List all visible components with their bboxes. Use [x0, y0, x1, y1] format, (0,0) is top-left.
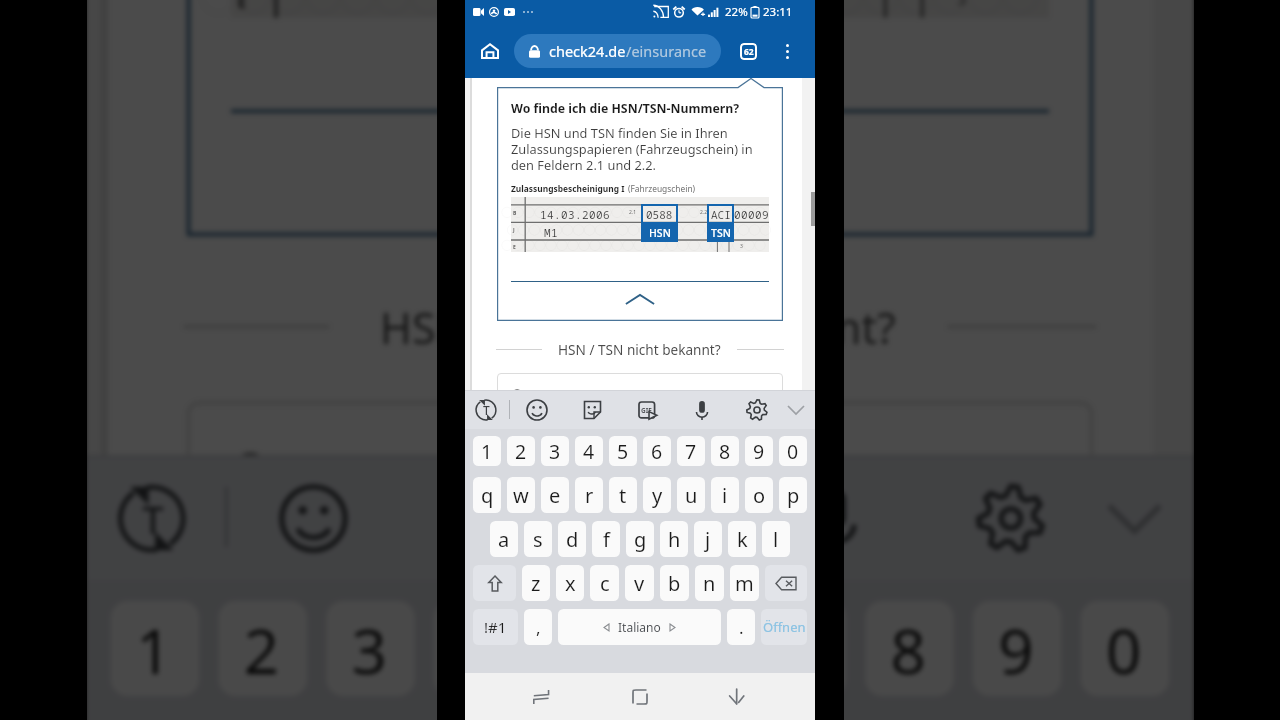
button[interactable]: l: [762, 521, 790, 557]
staticText: Öffnen: [763, 618, 806, 636]
button[interactable]: 5: [609, 436, 637, 466]
button[interactable]: f: [592, 521, 620, 557]
button[interactable]: s: [524, 521, 552, 557]
button[interactable]: Hide keyboard: [779, 393, 813, 427]
button[interactable]: o: [745, 477, 773, 513]
staticText: B: [513, 210, 517, 217]
button[interactable]: v: [625, 565, 654, 601]
button[interactable]: Emoji: [520, 393, 554, 427]
button[interactable]: !#1: [473, 609, 518, 645]
button[interactable]: check24.de: [514, 34, 721, 68]
button[interactable]: u: [677, 477, 705, 513]
staticText: q: [481, 482, 494, 509]
button[interactable]: 4: [434, 601, 523, 696]
button[interactable]: i: [711, 477, 739, 513]
button[interactable]: Stickers: [434, 465, 542, 572]
button[interactable]: GIF: [608, 465, 716, 572]
button[interactable]: Öffnen: [761, 609, 807, 645]
staticText: 3: [351, 607, 389, 693]
button[interactable]: Home: [472, 33, 507, 68]
staticText: !#1: [484, 617, 507, 637]
button[interactable]: h: [660, 521, 688, 557]
button[interactable]: 8: [711, 436, 739, 466]
button[interactable]: p: [779, 477, 807, 513]
button[interactable]: GIF: [630, 393, 664, 427]
button[interactable]: e: [541, 477, 569, 513]
button[interactable]: 4: [575, 436, 603, 466]
button[interactable]: 9: [973, 601, 1062, 696]
button[interactable]: Back: [713, 673, 761, 720]
staticText: 00009: [734, 207, 769, 222]
staticText: 9: [753, 438, 765, 465]
button[interactable]: 0: [779, 436, 807, 466]
staticText: E: [513, 244, 516, 251]
button[interactable]: Collapse: [620, 291, 660, 307]
button[interactable]: Emoji: [260, 465, 367, 572]
button[interactable]: 2: [218, 601, 307, 696]
button[interactable]: Fahrzeug suchen: [187, 401, 1093, 591]
button[interactable]: 7: [757, 601, 846, 696]
button[interactable]: Recent apps: [517, 673, 565, 720]
staticText: 0: [1106, 607, 1144, 693]
staticText: check24.de: [549, 41, 626, 61]
button[interactable]: 3: [541, 436, 569, 466]
button[interactable]: 7: [677, 436, 705, 466]
button[interactable]: ,: [524, 609, 552, 645]
button[interactable]: Italiano: [558, 609, 721, 645]
button[interactable]: d: [558, 521, 586, 557]
button[interactable]: k: [728, 521, 756, 557]
button[interactable]: b: [660, 565, 689, 601]
button[interactable]: Shift: [473, 565, 516, 601]
staticText: l: [773, 526, 779, 553]
staticText: 7: [783, 607, 821, 693]
staticText: Fahrzeug suchen: [536, 388, 637, 405]
button[interactable]: More options: [770, 34, 804, 68]
staticText: T: [483, 402, 490, 418]
button[interactable]: 1: [473, 436, 501, 466]
button[interactable]: Voice input: [783, 465, 890, 572]
button[interactable]: Voice input: [685, 393, 719, 427]
button[interactable]: 1: [111, 601, 199, 696]
button[interactable]: 3: [326, 601, 415, 696]
staticText: x: [565, 570, 576, 597]
button[interactable]: m: [730, 565, 759, 601]
button[interactable]: Keyboard settings: [957, 465, 1065, 572]
button[interactable]: n: [695, 565, 724, 601]
button[interactable]: c: [590, 565, 619, 601]
button[interactable]: a: [490, 521, 518, 557]
button[interactable]: 2: [507, 436, 535, 466]
button[interactable]: 0: [1081, 601, 1169, 696]
button[interactable]: Stickers: [575, 393, 609, 427]
staticText: y: [652, 482, 663, 509]
staticText: 2: [515, 438, 527, 465]
button[interactable]: Translate: [98, 465, 206, 572]
button[interactable]: g: [626, 521, 654, 557]
button[interactable]: Tabs: [731, 34, 765, 68]
button[interactable]: 8: [865, 601, 954, 696]
button[interactable]: w: [507, 477, 535, 513]
button[interactable]: 6: [643, 436, 671, 466]
button[interactable]: 9: [745, 436, 773, 466]
button[interactable]: y: [643, 477, 671, 513]
button[interactable]: Collapse: [577, 141, 703, 192]
button[interactable]: Home: [616, 673, 664, 720]
button[interactable]: Backspace: [765, 565, 807, 601]
staticText: 6: [675, 607, 713, 693]
staticText: HSN / TSN nicht bekannt?: [380, 297, 897, 357]
button[interactable]: z: [522, 565, 550, 601]
button[interactable]: q: [473, 477, 501, 513]
button[interactable]: j: [694, 521, 722, 557]
button[interactable]: t: [609, 477, 637, 513]
staticText: 14.03.2006: [540, 207, 610, 222]
button[interactable]: 6: [649, 601, 738, 696]
button[interactable]: x: [556, 565, 584, 601]
staticText: M1: [544, 225, 558, 240]
button[interactable]: Translate: [469, 393, 503, 427]
button[interactable]: Fahrzeug suchen: [497, 373, 783, 433]
button[interactable]: 5: [542, 601, 630, 696]
button[interactable]: r: [575, 477, 603, 513]
staticText: (Fahrzeugschein): [628, 183, 696, 194]
button[interactable]: Keyboard settings: [740, 393, 774, 427]
button[interactable]: .: [727, 609, 755, 645]
